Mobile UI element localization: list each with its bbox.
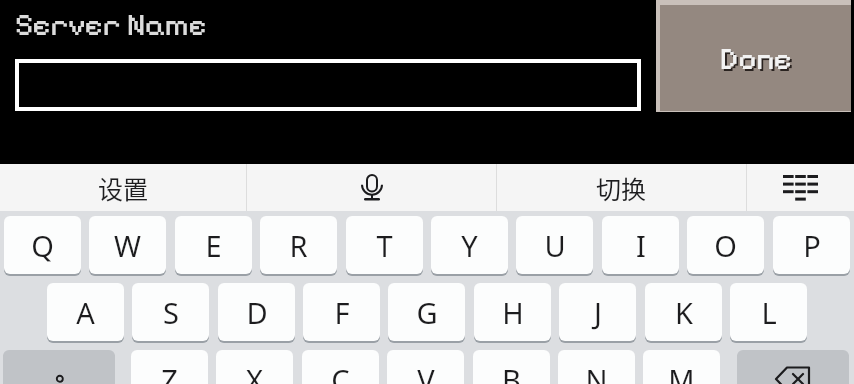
staticText: Server Name: [15, 6, 207, 43]
other: Switch keyboard: [783, 175, 818, 201]
staticText: C: [331, 360, 350, 384]
staticText: I: [636, 226, 646, 265]
other: Backspace: [773, 359, 813, 384]
staticText: S: [163, 293, 179, 332]
staticText: J: [594, 293, 602, 332]
staticText: M: [668, 360, 695, 384]
staticText: K: [675, 293, 693, 332]
staticText: Done: [720, 40, 792, 77]
button[interactable]: 切换: [497, 164, 746, 211]
staticText: H: [502, 293, 524, 332]
button[interactable]: G: [388, 283, 465, 341]
button[interactable]: X: [216, 350, 293, 384]
staticText: F: [334, 293, 350, 332]
staticText: Y: [461, 226, 478, 265]
button[interactable]: H: [474, 283, 551, 341]
button[interactable]: Done: [660, 5, 851, 111]
button[interactable]: V: [387, 350, 464, 384]
button[interactable]: Z: [131, 350, 208, 384]
button[interactable]: A: [47, 283, 124, 341]
staticText: 设置: [98, 170, 149, 206]
other: Punctuation: [45, 365, 73, 384]
staticText: N: [585, 360, 608, 384]
staticText: R: [289, 226, 308, 265]
button[interactable]: O: [687, 216, 764, 274]
button[interactable]: F: [303, 283, 380, 341]
staticText: T: [376, 226, 393, 265]
button[interactable]: P: [773, 216, 850, 274]
staticText: G: [416, 293, 438, 332]
button[interactable]: N: [558, 350, 635, 384]
button[interactable]: Y: [431, 216, 508, 274]
button[interactable]: C: [302, 350, 379, 384]
button[interactable]: Switch keyboard: [747, 164, 854, 211]
other: Voice input: [361, 174, 383, 201]
button[interactable]: Q: [4, 216, 81, 274]
button[interactable]: J: [559, 283, 636, 341]
staticText: W: [114, 226, 141, 265]
staticText: A: [76, 293, 95, 332]
button[interactable]: E: [175, 216, 252, 274]
button[interactable]: D: [218, 283, 295, 341]
button[interactable]: Backspace: [737, 350, 849, 384]
button[interactable]: R: [260, 216, 337, 274]
button[interactable]: T: [346, 216, 423, 274]
staticText: Done: [722, 42, 794, 79]
staticText: O: [714, 226, 737, 265]
staticText: Q: [31, 226, 54, 265]
staticText: D: [246, 293, 268, 332]
button[interactable]: M: [643, 350, 720, 384]
button[interactable]: W: [89, 216, 166, 274]
button[interactable]: 设置: [0, 164, 246, 211]
button[interactable]: K: [645, 283, 722, 341]
staticText: X: [246, 360, 263, 384]
staticText: U: [544, 226, 566, 265]
staticText: E: [205, 226, 222, 265]
button[interactable]: S: [132, 283, 209, 341]
button[interactable]: L: [730, 283, 807, 341]
staticText: V: [417, 360, 435, 384]
staticText: Z: [161, 360, 178, 384]
staticText: P: [803, 226, 821, 265]
button[interactable]: I: [602, 216, 679, 274]
staticText: 切换: [596, 170, 647, 206]
staticText: L: [761, 293, 777, 332]
button[interactable]: Punctuation: [3, 350, 115, 384]
button[interactable]: Voice input: [247, 164, 496, 211]
button[interactable]: U: [516, 216, 593, 274]
staticText: B: [502, 360, 521, 384]
button[interactable]: B: [473, 350, 550, 384]
